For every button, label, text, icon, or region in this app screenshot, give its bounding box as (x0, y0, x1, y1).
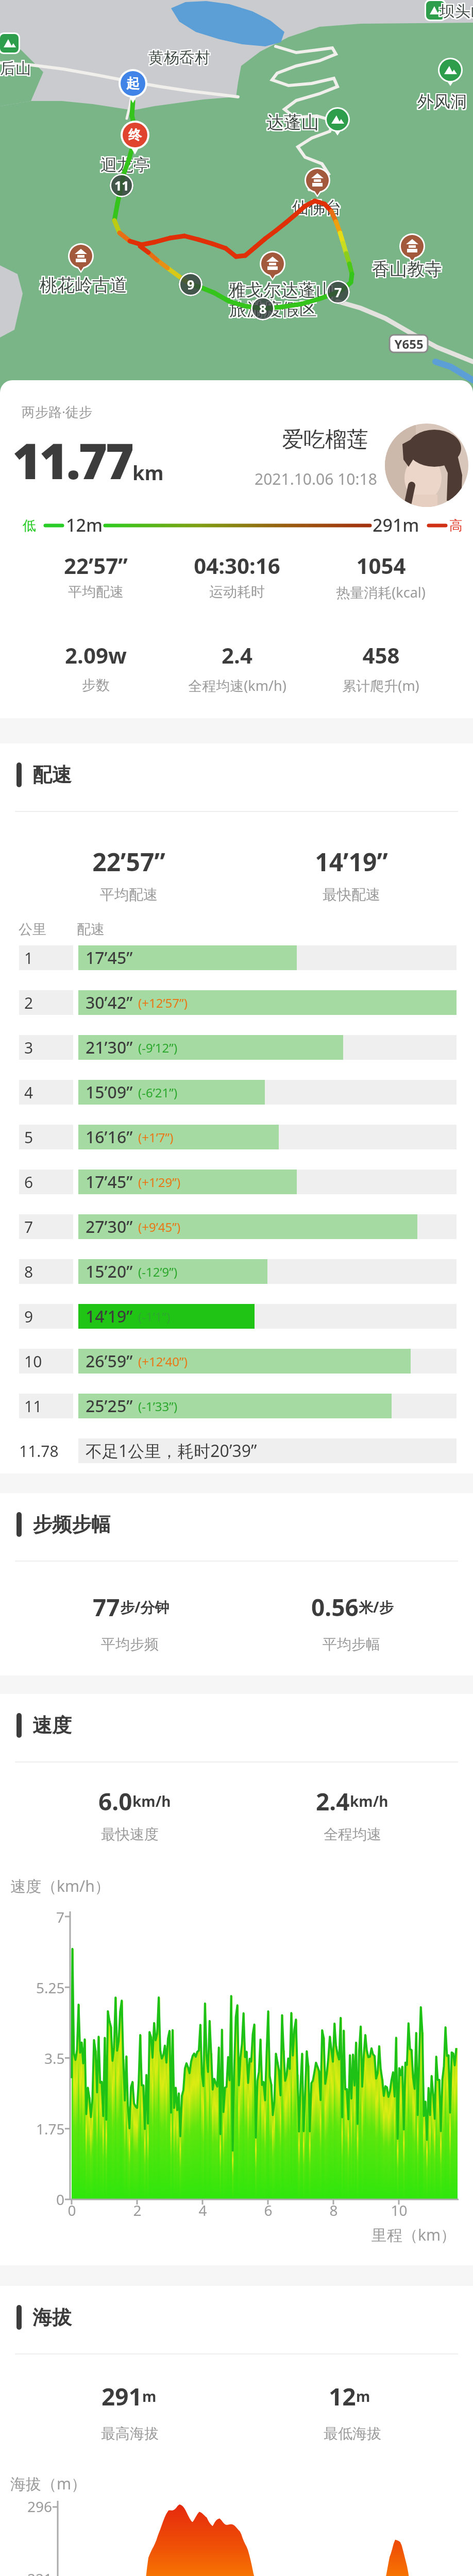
staticText: 后山 (0, 59, 30, 78)
button[interactable] (78, 1304, 457, 1329)
button[interactable] (78, 1080, 457, 1105)
staticText: 16’16” (86, 1126, 133, 1148)
staticText: 速度 (32, 1713, 72, 1738)
button[interactable] (78, 1035, 457, 1060)
staticText: 最低海拔 (324, 2425, 381, 2443)
staticText: 坝头山 (438, 1, 473, 20)
staticText: 达蓬山 (266, 111, 319, 133)
staticText: 累计爬升(m) (342, 676, 419, 695)
staticText: 迴龙亭 (100, 156, 150, 176)
staticText: 迴龙亭 (102, 156, 151, 176)
staticText: 不足1公里，耗时20’39” (86, 1439, 257, 1462)
staticText: 仙佛台 (292, 196, 342, 217)
staticText: 平均步幅 (323, 1635, 380, 1653)
staticText: 0 (67, 2200, 76, 2220)
staticText: 8 (329, 2200, 338, 2220)
button[interactable] (78, 945, 457, 970)
staticText: 2 (24, 992, 33, 1013)
staticText: 仙佛台 (291, 196, 341, 217)
staticText: 平均配速 (68, 583, 124, 601)
staticText: m (142, 2386, 157, 2406)
staticText: 桃花岭古道 (41, 275, 128, 297)
staticText: 雅戈尔达蓬山 (227, 278, 332, 300)
staticText: km (132, 459, 164, 486)
staticText: 平均配速 (100, 886, 158, 904)
button[interactable] (78, 1259, 457, 1284)
staticText: 5 (24, 1127, 33, 1148)
staticText: 旅游度假区 (229, 298, 317, 320)
staticText: 坝头山 (438, 3, 473, 22)
staticText: 3.5 (44, 2048, 65, 2068)
staticText: 终 (128, 127, 142, 144)
staticText: 迴龙亭 (99, 156, 149, 176)
staticText: 后山 (0, 59, 31, 78)
staticText: 雅戈尔达蓬山 (228, 278, 333, 300)
staticText: 达蓬山 (267, 112, 320, 134)
staticText: 2 (133, 2200, 142, 2220)
staticText: 黄杨岙村 (147, 47, 209, 66)
staticText: 10 (24, 1351, 42, 1372)
staticText: 外风洞 (418, 91, 468, 112)
staticText: 达蓬山 (267, 110, 320, 132)
staticText: 10 (391, 2200, 408, 2220)
staticText: 黄杨岙村 (148, 49, 210, 69)
staticText: 雅戈尔达蓬山 (227, 280, 332, 302)
staticText: 最快速度 (101, 1825, 159, 1843)
staticText: 雅戈尔达蓬山 (227, 279, 332, 301)
button[interactable] (78, 1170, 457, 1194)
staticText: 291m (373, 513, 419, 537)
staticText: 桃花岭古道 (39, 274, 126, 296)
staticText: 桃花岭古道 (41, 274, 128, 296)
staticText: 旅游度假区 (228, 299, 316, 321)
staticText: 仙佛台 (293, 197, 343, 218)
staticText: 香山教寺 (371, 258, 441, 280)
staticText: m (356, 2386, 370, 2406)
staticText: 外风洞 (417, 91, 467, 112)
staticText: 香山教寺 (373, 258, 443, 280)
staticText: 坝头山 (438, 2, 473, 21)
staticText: 热量消耗(kcal) (336, 583, 426, 602)
staticText: 0 (56, 2190, 65, 2209)
button[interactable] (78, 1125, 457, 1149)
staticText: 17’45” (86, 1171, 133, 1193)
staticText: 6 (24, 1172, 33, 1193)
staticText: 11.77 (12, 426, 132, 493)
button[interactable] (78, 1349, 457, 1374)
staticText: 17’45” (86, 946, 133, 969)
staticText: 桃花岭古道 (40, 273, 127, 295)
staticText: 12m (66, 513, 103, 537)
staticText: 桃花岭古道 (40, 274, 127, 296)
button[interactable] (78, 1214, 457, 1239)
staticText: 达蓬山 (265, 112, 318, 134)
staticText: 4 (198, 2200, 207, 2220)
staticText: 30’42” (86, 991, 133, 1014)
staticText: 21’30” (86, 1036, 133, 1059)
staticText: 坝头山 (440, 2, 473, 21)
staticText: 达蓬山 (267, 111, 320, 133)
staticText: 外风洞 (416, 92, 466, 113)
staticText: 5.25 (36, 1978, 65, 1997)
staticText: 77 (93, 1591, 120, 1623)
staticText: 旅游度假区 (229, 297, 317, 319)
staticText: (-1’33”) (138, 1398, 178, 1415)
staticText: 最快配速 (323, 886, 380, 904)
staticText: 2.09w (65, 640, 127, 670)
staticText: 黄杨岙村 (149, 47, 211, 66)
staticText: 旅游度假区 (230, 298, 318, 320)
staticText: 仙佛台 (293, 198, 343, 219)
staticText: 坝头山 (440, 3, 473, 22)
staticText: (-6’21”) (138, 1084, 178, 1101)
staticText: 坝头山 (440, 1, 473, 20)
staticText: 14’19” (86, 1305, 133, 1328)
button[interactable] (78, 990, 457, 1015)
staticText: 低 (23, 517, 36, 534)
staticText: (+12’57”) (138, 994, 188, 1011)
staticText: 公里 (19, 921, 46, 938)
button[interactable] (237, 422, 469, 510)
staticText: 迴龙亭 (99, 154, 149, 174)
button[interactable] (78, 1394, 457, 1418)
staticText: 11.78 (19, 1440, 59, 1462)
staticText: 15’09” (86, 1081, 133, 1104)
staticText: 迴龙亭 (99, 155, 149, 175)
staticText: km/h (132, 1791, 171, 1811)
